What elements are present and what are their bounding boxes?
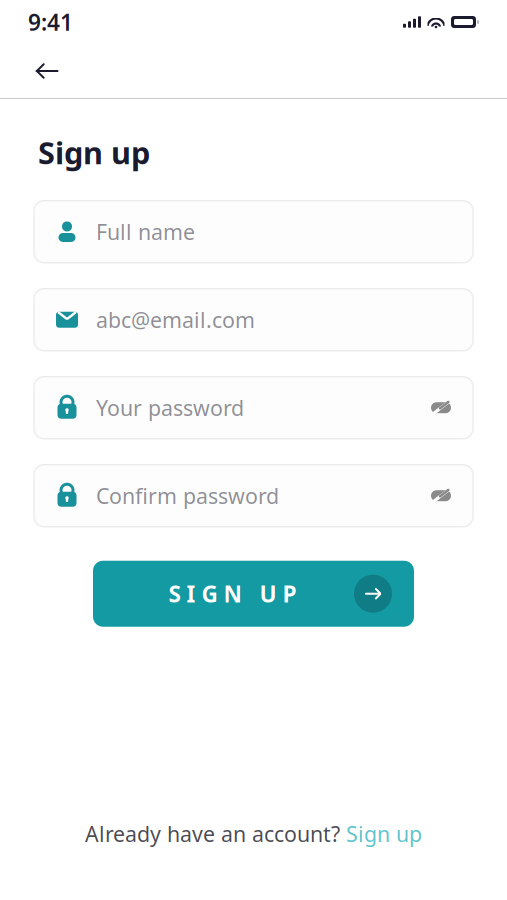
- staticText: Your password: [96, 394, 244, 422]
- staticText: abc@email.com: [96, 306, 255, 334]
- staticText: Full name: [96, 218, 195, 246]
- button[interactable]: Your password: [34, 377, 473, 439]
- staticText: Sign up: [346, 820, 422, 848]
- staticText: S I G N U P: [168, 579, 296, 609]
- staticText: Confirm password: [96, 482, 279, 510]
- button[interactable]: Back: [22, 50, 72, 92]
- staticText: Sign up: [38, 132, 150, 173]
- staticText: Already have an account?: [85, 820, 340, 848]
- button[interactable]: Sign up: [346, 820, 422, 848]
- button[interactable]: S I G N U P: [93, 561, 414, 627]
- button[interactable]: abc@email.com: [34, 289, 473, 351]
- staticText: 9:41: [28, 7, 73, 37]
- button[interactable]: Full name: [34, 201, 473, 263]
- button[interactable]: Confirm password: [34, 465, 473, 527]
